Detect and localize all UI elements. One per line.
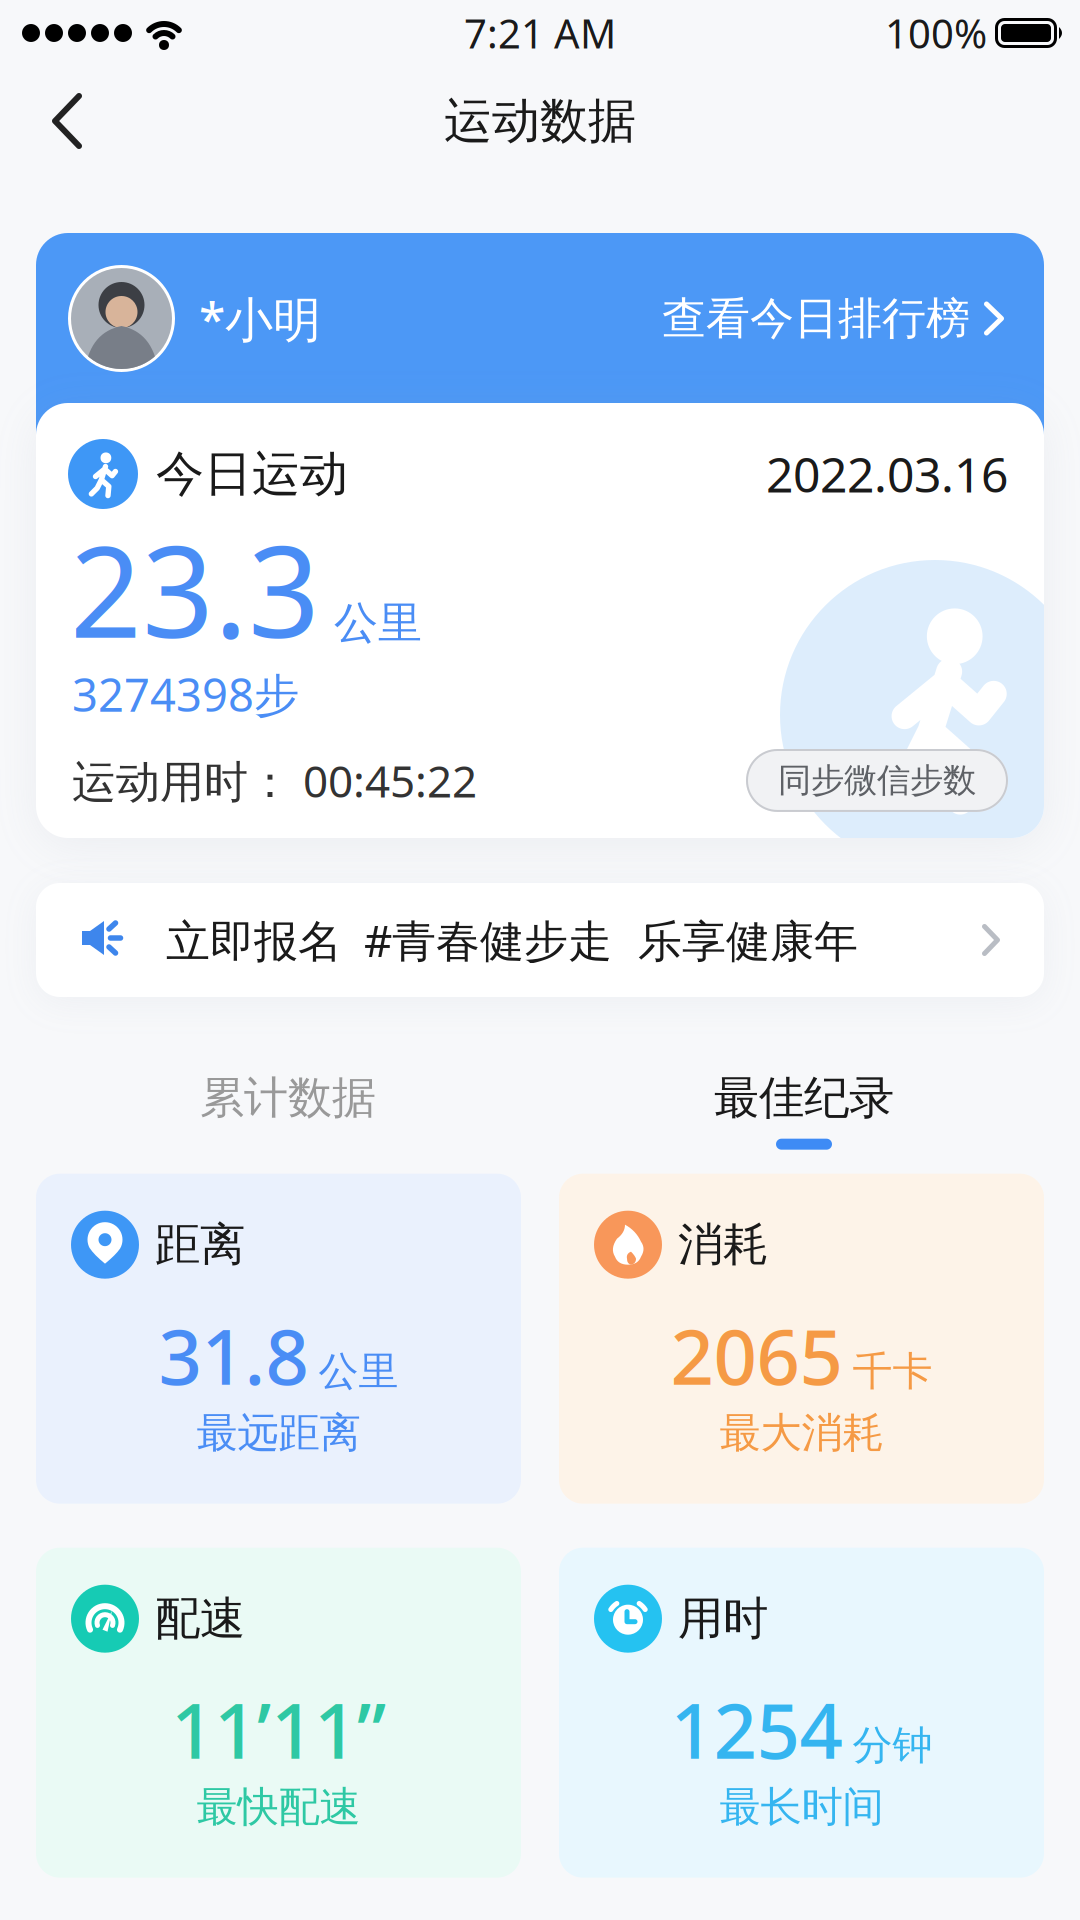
staticText: 3274398步: [72, 664, 299, 724]
button[interactable]: 查看今日排行榜: [662, 291, 1004, 345]
button[interactable]: 立即报名 #青春健步走 乐享健康年: [36, 883, 1044, 997]
staticText: 最长时间: [719, 1782, 883, 1832]
button[interactable]: *小明: [68, 265, 321, 372]
staticText: 2022.03.16: [766, 442, 1008, 506]
staticText: 最快配速: [196, 1782, 360, 1832]
staticText: 累计数据: [200, 1071, 376, 1125]
staticText: 11’11”: [171, 1679, 386, 1780]
staticText: 1254: [670, 1679, 842, 1780]
staticText: 100%: [885, 6, 987, 59]
button[interactable]: Back: [0, 93, 82, 149]
staticText: 公里: [334, 596, 422, 650]
staticText: 最佳纪录: [714, 1070, 894, 1126]
staticText: 同步微信步数: [778, 760, 976, 801]
staticText: 2065: [670, 1305, 842, 1406]
staticText: 用时: [678, 1591, 768, 1646]
staticText: 运动用时： 00:45:22: [72, 751, 477, 810]
staticText: 公里: [318, 1347, 398, 1396]
staticText: 距离: [155, 1217, 245, 1272]
staticText: 23.3: [70, 506, 320, 672]
staticText: 千卡: [852, 1347, 932, 1396]
staticText: 7:21 AM: [464, 6, 616, 59]
button[interactable]: 最佳纪录: [540, 1070, 1044, 1150]
staticText: 消耗: [678, 1217, 768, 1272]
staticText: 最大消耗: [719, 1408, 883, 1458]
staticText: *小明: [199, 287, 321, 350]
staticText: 分钟: [852, 1721, 932, 1770]
button[interactable]: 同步微信步数: [746, 749, 1008, 812]
staticText: 立即报名 #青春健步走 乐享健康年: [166, 911, 858, 969]
staticText: 今日运动: [156, 444, 348, 503]
staticText: 运动数据: [444, 91, 636, 150]
staticText: 查看今日排行榜: [662, 291, 970, 345]
staticText: 配速: [155, 1591, 245, 1646]
staticText: 最远距离: [196, 1408, 360, 1458]
staticText: 31.8: [158, 1305, 308, 1406]
button[interactable]: 累计数据: [36, 1071, 540, 1149]
